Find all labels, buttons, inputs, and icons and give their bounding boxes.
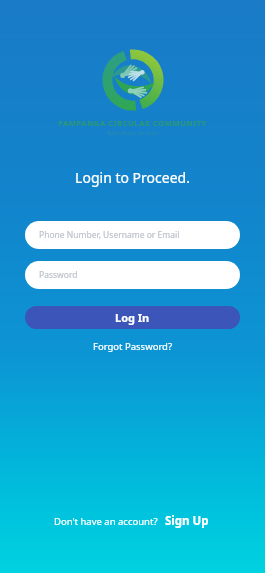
staticText: Sign Up: [165, 513, 209, 529]
button[interactable]: Forgot Password?: [87, 338, 179, 355]
other: Pampanga Circular Community logo: [101, 48, 165, 112]
staticText: Phone Number, Username or Email: [39, 229, 180, 241]
staticText: Forgot Password?: [93, 340, 173, 353]
button[interactable]: Log In: [25, 306, 240, 329]
staticText: Don't have an account?: [54, 515, 158, 528]
staticText: Login to Proceed.: [75, 168, 190, 187]
button[interactable]: Sign Up: [163, 511, 211, 531]
button[interactable]: Phone Number, Username or Email: [25, 221, 240, 249]
staticText: PAMPANGA CIRCULAR COMMUNITY: [58, 118, 207, 128]
button[interactable]: Password: [25, 261, 240, 289]
staticText: Log In: [115, 310, 150, 325]
staticText: Built with you, for future: [107, 130, 159, 136]
staticText: Password: [39, 269, 78, 281]
